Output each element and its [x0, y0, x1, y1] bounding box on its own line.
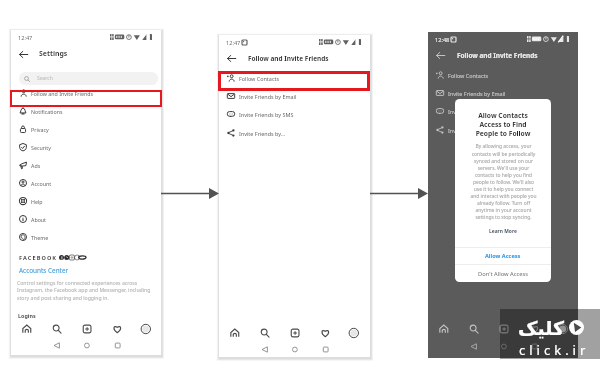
staticText: Settings [39, 49, 68, 58]
button[interactable]: Invite Friends by... [428, 121, 578, 139]
button[interactable]: Accounts Center [19, 266, 69, 275]
staticText: 12:47 [226, 39, 241, 47]
button[interactable]: Back [431, 46, 449, 65]
button[interactable]: Account [11, 174, 161, 192]
staticText: By allowing access, your contacts will b… [469, 143, 538, 220]
staticText: Invite Friends by SMS [239, 111, 294, 118]
button[interactable]: New post [493, 320, 515, 338]
staticText: Help [31, 198, 43, 205]
button[interactable]: Security [11, 138, 161, 156]
button[interactable]: New post [76, 320, 98, 338]
button[interactable]: Learn More [455, 226, 551, 237]
staticText: Follow and Invite Friends [248, 54, 329, 63]
button[interactable]: Back [467, 340, 481, 353]
staticText: 12:47 [18, 34, 33, 42]
button[interactable]: Privacy [11, 120, 161, 138]
button[interactable]: Invite Friends by Email [219, 87, 370, 105]
button[interactable]: Home [288, 343, 302, 356]
button[interactable]: Back [258, 343, 272, 356]
staticText: Follow and Invite Friends [31, 90, 93, 97]
staticText: کلیک [518, 317, 565, 339]
button[interactable]: Theme [11, 228, 161, 246]
button[interactable]: New post [284, 324, 306, 342]
staticText: Don't Allow Access [478, 270, 529, 278]
button[interactable]: Invite Friends by Email [428, 84, 578, 102]
staticText: Allow Contacts Access to Find People to … [455, 111, 551, 138]
button[interactable]: Search [19, 72, 158, 85]
staticText: Control settings for connected experienc… [17, 279, 158, 301]
staticText: FACEBOOK [19, 254, 58, 262]
button[interactable]: Home [16, 320, 38, 338]
staticText: Invite Friends by... [239, 130, 286, 137]
staticText: About [31, 216, 47, 223]
staticText: Invite Friends by Email [448, 90, 506, 97]
button[interactable]: Back [14, 45, 32, 63]
button[interactable]: Home [497, 340, 511, 353]
staticText: Theme [31, 234, 49, 241]
staticText: Learn More [489, 228, 517, 235]
staticText: Follow Contacts [239, 75, 280, 82]
button[interactable]: Search [254, 324, 276, 342]
button[interactable]: Activity [314, 324, 336, 342]
button[interactable]: Ads [11, 156, 161, 174]
button[interactable]: Invite Friends by SMS [428, 102, 578, 120]
button[interactable]: Help [11, 192, 161, 210]
button[interactable]: Allow Access [455, 247, 551, 264]
button[interactable]: Follow and Invite Friends [11, 84, 161, 102]
staticText: Follow Contacts [448, 72, 489, 79]
staticText: Account [31, 180, 52, 187]
button[interactable]: About [11, 210, 161, 228]
staticText: Ads [31, 162, 41, 169]
staticText: Invite Friends by... [448, 127, 495, 134]
button[interactable]: Back [222, 49, 240, 68]
button[interactable]: Activity [106, 320, 128, 338]
button[interactable]: Don't Allow Access [455, 265, 551, 282]
staticText: Privacy [31, 126, 49, 133]
button[interactable]: Search [463, 320, 485, 338]
staticText: 12:48 [435, 36, 450, 44]
button[interactable]: Search [46, 320, 68, 338]
button[interactable]: Activity [523, 320, 545, 338]
staticText: Logins [18, 312, 36, 319]
staticText: Security [31, 144, 51, 151]
button[interactable]: Home [433, 320, 455, 338]
button[interactable]: Profile [343, 324, 365, 342]
button[interactable]: Home [80, 339, 94, 352]
button[interactable]: Profile [135, 320, 157, 338]
button[interactable]: Recents [111, 339, 125, 352]
button[interactable]: Notifications [11, 102, 161, 120]
staticText: Allow Access [485, 252, 521, 260]
staticText: Notifications [31, 108, 63, 115]
button[interactable]: Follow Contacts [219, 69, 370, 87]
button[interactable]: Recents [528, 340, 542, 353]
staticText: Invite Friends by Email [239, 93, 297, 100]
button[interactable]: Profile [552, 320, 574, 338]
staticText: Invite Friends by SMS [448, 108, 503, 115]
button[interactable]: Home [224, 324, 246, 342]
button[interactable]: Invite Friends by SMS [219, 105, 370, 123]
staticText: click.ir [519, 341, 590, 359]
button[interactable]: Follow Contacts [428, 66, 578, 84]
button[interactable]: Invite Friends by... [219, 124, 370, 142]
button[interactable]: Recents [319, 343, 333, 356]
staticText: Follow and Invite Friends [457, 51, 538, 60]
staticText: Search [37, 75, 53, 82]
button[interactable]: Back [50, 339, 64, 352]
